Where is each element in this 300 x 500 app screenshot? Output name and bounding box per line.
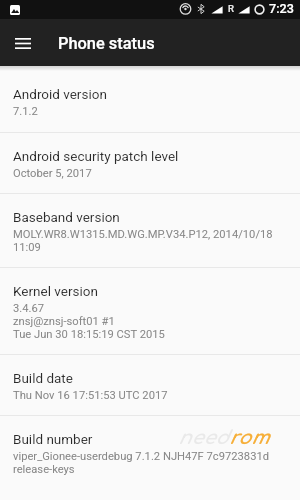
button[interactable]: Build number — [0, 416, 300, 490]
button[interactable]: Kernel version — [0, 268, 300, 354]
staticText: 3.4.67 znsj@znsj-soft01 #1 Tue Jun 30 18… — [13, 302, 165, 341]
staticText: Baseband version — [13, 209, 120, 225]
staticText: Android security patch level — [13, 148, 179, 164]
staticText: MOLY.WR8.W1315.MD.WG.MP.V34.P12, 2014/10… — [13, 228, 274, 254]
button[interactable]: Android security patch level — [0, 133, 300, 193]
staticText: October 5, 2017 — [13, 167, 92, 180]
staticText: 7.1.2 — [13, 105, 38, 118]
staticText: 7:23 — [269, 1, 294, 16]
button[interactable]: Baseband version — [0, 194, 300, 267]
staticText: rom — [229, 427, 270, 448]
staticText: R — [228, 3, 234, 14]
staticText: Thu Nov 16 17:51:53 UTC 2017 — [13, 389, 168, 402]
staticText: Build date — [13, 370, 73, 386]
button[interactable]: Open navigation menu — [6, 26, 40, 60]
staticText: Android version — [13, 86, 107, 102]
button[interactable]: Android version — [0, 71, 300, 132]
staticText: need — [178, 427, 229, 448]
staticText: Phone status — [58, 34, 155, 53]
staticText: viper_Gionee-userdebug 7.1.2 NJH47F 7c97… — [13, 450, 274, 476]
staticText: Build number — [13, 431, 93, 447]
button[interactable]: Build date — [0, 355, 300, 415]
staticText: Kernel version — [13, 283, 98, 299]
